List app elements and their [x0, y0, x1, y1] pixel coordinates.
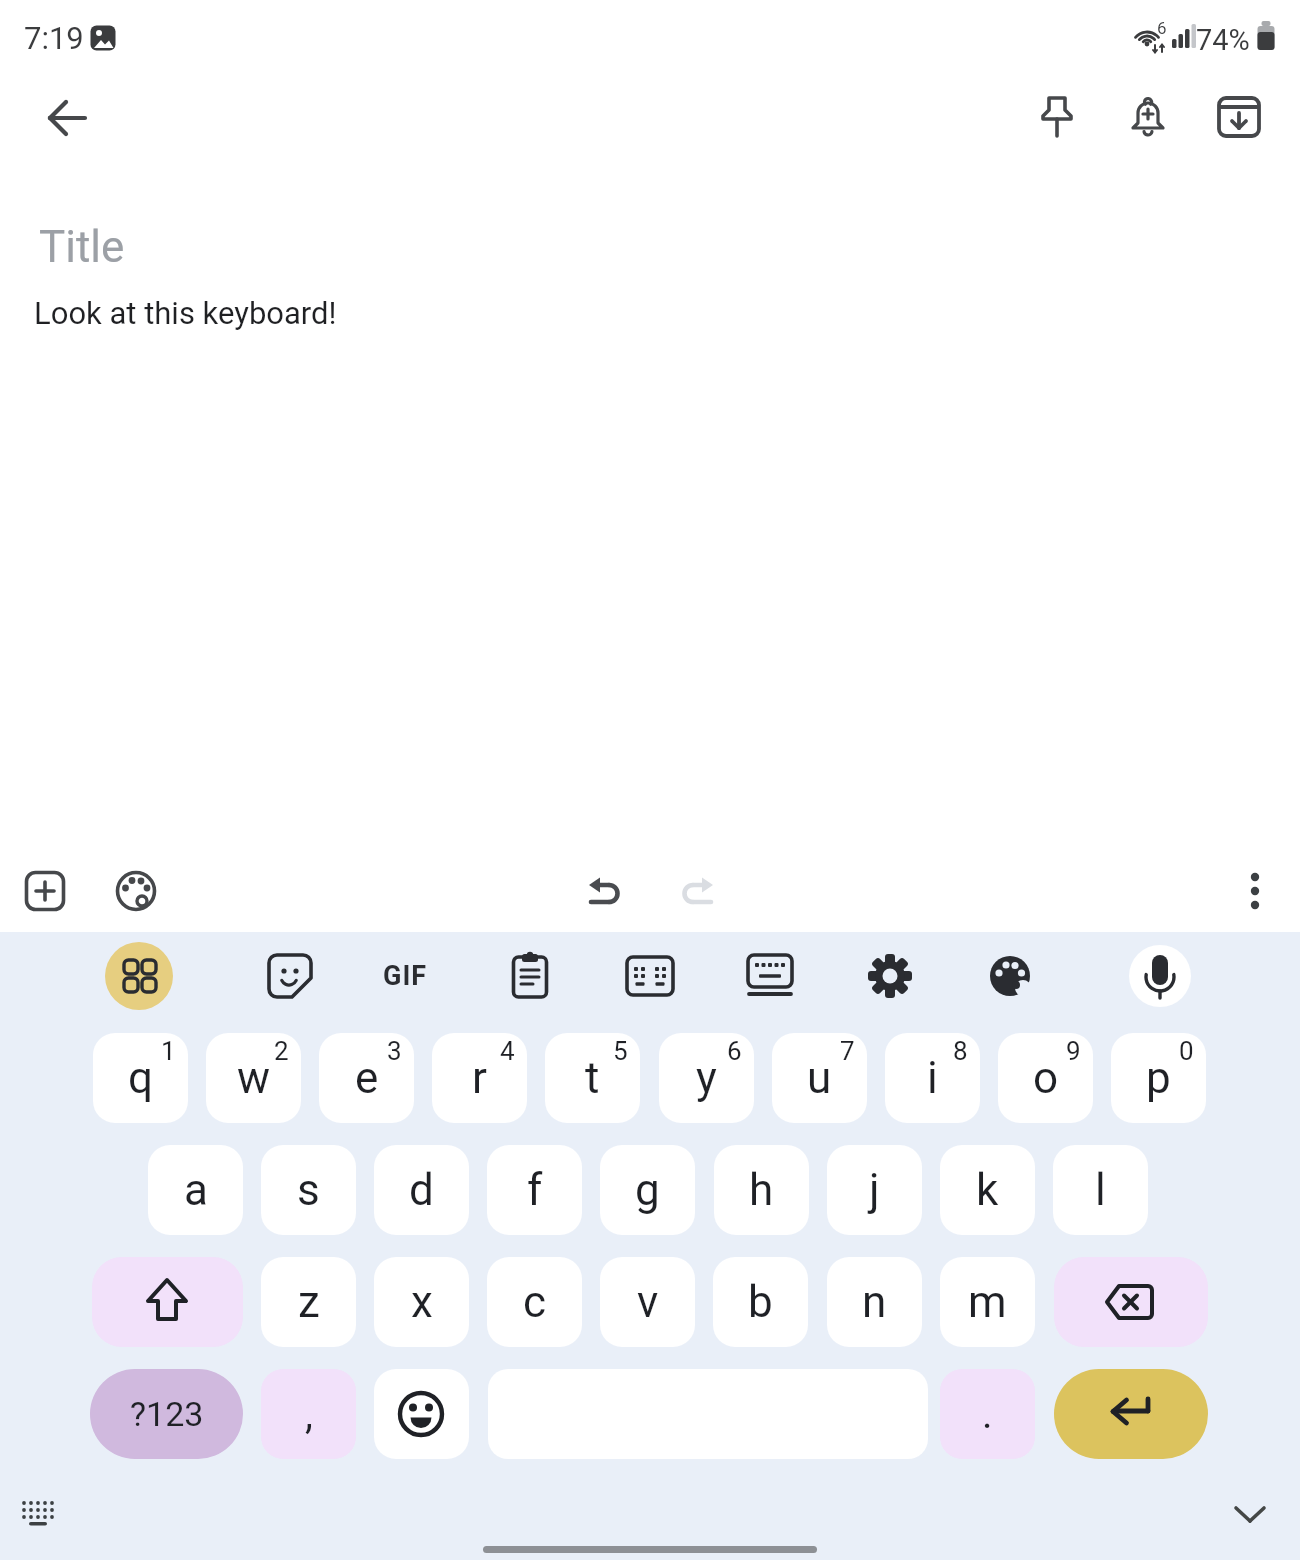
- staticText: .: [982, 1391, 993, 1438]
- staticText: z: [298, 1276, 320, 1328]
- staticText: 1: [161, 1036, 176, 1066]
- button[interactable]: d: [374, 1145, 469, 1235]
- button[interactable]: [742, 948, 798, 1004]
- staticText: o: [1033, 1052, 1059, 1104]
- staticText: 4: [500, 1036, 515, 1066]
- button[interactable]: ,: [261, 1369, 356, 1459]
- button[interactable]: [92, 1257, 243, 1347]
- staticText: ,: [305, 1391, 313, 1438]
- button[interactable]: t: [545, 1033, 640, 1123]
- button[interactable]: b: [713, 1257, 808, 1347]
- button[interactable]: j: [827, 1145, 922, 1235]
- staticText: 9: [1066, 1036, 1081, 1066]
- button[interactable]: i: [885, 1033, 980, 1123]
- button[interactable]: [862, 948, 918, 1004]
- staticText: Title: [39, 221, 125, 273]
- staticText: t: [585, 1052, 600, 1104]
- staticText: 5: [613, 1036, 628, 1066]
- button[interactable]: [108, 864, 164, 920]
- button[interactable]: [105, 942, 173, 1010]
- button[interactable]: s: [261, 1145, 356, 1235]
- button[interactable]: k: [940, 1145, 1035, 1235]
- button[interactable]: [578, 864, 634, 920]
- staticText: p: [1146, 1052, 1171, 1104]
- button[interactable]: [1129, 945, 1191, 1007]
- staticText: j: [869, 1164, 880, 1216]
- staticText: r: [472, 1052, 487, 1104]
- button[interactable]: ?123: [90, 1369, 243, 1459]
- button[interactable]: q: [93, 1033, 188, 1123]
- button[interactable]: m: [940, 1257, 1035, 1347]
- staticText: 74%: [1196, 23, 1250, 57]
- button[interactable]: [982, 948, 1038, 1004]
- staticText: GIF: [383, 960, 428, 992]
- staticText: 7:19: [24, 20, 84, 56]
- button[interactable]: w: [206, 1033, 301, 1123]
- staticText: 7: [840, 1036, 855, 1066]
- button[interactable]: [1212, 90, 1268, 146]
- button[interactable]: [502, 948, 558, 1004]
- button[interactable]: [262, 948, 318, 1004]
- button[interactable]: [18, 864, 74, 920]
- staticText: v: [637, 1276, 659, 1328]
- button[interactable]: e: [319, 1033, 414, 1123]
- button[interactable]: z: [261, 1257, 356, 1347]
- button[interactable]: [12, 1488, 68, 1544]
- button[interactable]: n: [827, 1257, 922, 1347]
- button[interactable]: x: [374, 1257, 469, 1347]
- button[interactable]: [1228, 864, 1284, 920]
- button[interactable]: [1030, 90, 1086, 146]
- button[interactable]: p: [1111, 1033, 1206, 1123]
- staticText: l: [1095, 1164, 1106, 1216]
- staticText: d: [409, 1164, 434, 1216]
- staticText: y: [696, 1052, 717, 1104]
- staticText: 0: [1179, 1036, 1194, 1066]
- staticText: w: [237, 1052, 271, 1104]
- button[interactable]: o: [998, 1033, 1093, 1123]
- staticText: 8: [953, 1036, 968, 1066]
- staticText: e: [355, 1052, 379, 1104]
- staticText: f: [527, 1164, 543, 1216]
- button[interactable]: h: [714, 1145, 809, 1235]
- staticText: b: [748, 1276, 773, 1328]
- staticText: 3: [387, 1036, 402, 1066]
- staticText: q: [128, 1052, 154, 1104]
- staticText: Look at this keyboard!: [34, 295, 337, 331]
- button[interactable]: l: [1053, 1145, 1148, 1235]
- staticText: a: [184, 1164, 208, 1216]
- button[interactable]: u: [772, 1033, 867, 1123]
- button[interactable]: c: [487, 1257, 582, 1347]
- staticText: h: [749, 1164, 774, 1216]
- button[interactable]: .: [940, 1369, 1035, 1459]
- staticText: ?123: [130, 1394, 204, 1434]
- staticText: x: [411, 1276, 433, 1328]
- button[interactable]: f: [487, 1145, 582, 1235]
- staticText: m: [968, 1276, 1007, 1328]
- staticText: u: [807, 1052, 832, 1104]
- staticText: 6: [727, 1036, 742, 1066]
- button[interactable]: [1054, 1257, 1208, 1347]
- button[interactable]: [1120, 90, 1176, 146]
- button[interactable]: v: [600, 1257, 695, 1347]
- staticText: g: [635, 1164, 660, 1216]
- button[interactable]: r: [432, 1033, 527, 1123]
- button[interactable]: [1222, 1488, 1278, 1544]
- button[interactable]: [40, 90, 96, 146]
- staticText: 2: [274, 1036, 289, 1066]
- button[interactable]: [1054, 1369, 1208, 1459]
- button[interactable]: [622, 948, 678, 1004]
- button[interactable]: [377, 948, 433, 1004]
- staticText: i: [927, 1052, 938, 1104]
- staticText: n: [862, 1276, 887, 1328]
- button[interactable]: y: [659, 1033, 754, 1123]
- button[interactable]: g: [600, 1145, 695, 1235]
- staticText: k: [976, 1164, 999, 1216]
- button[interactable]: [668, 864, 724, 920]
- button[interactable]: a: [148, 1145, 243, 1235]
- button[interactable]: [374, 1369, 469, 1459]
- staticText: c: [523, 1276, 547, 1328]
- staticText: 6: [1157, 18, 1167, 38]
- staticText: s: [297, 1164, 320, 1216]
